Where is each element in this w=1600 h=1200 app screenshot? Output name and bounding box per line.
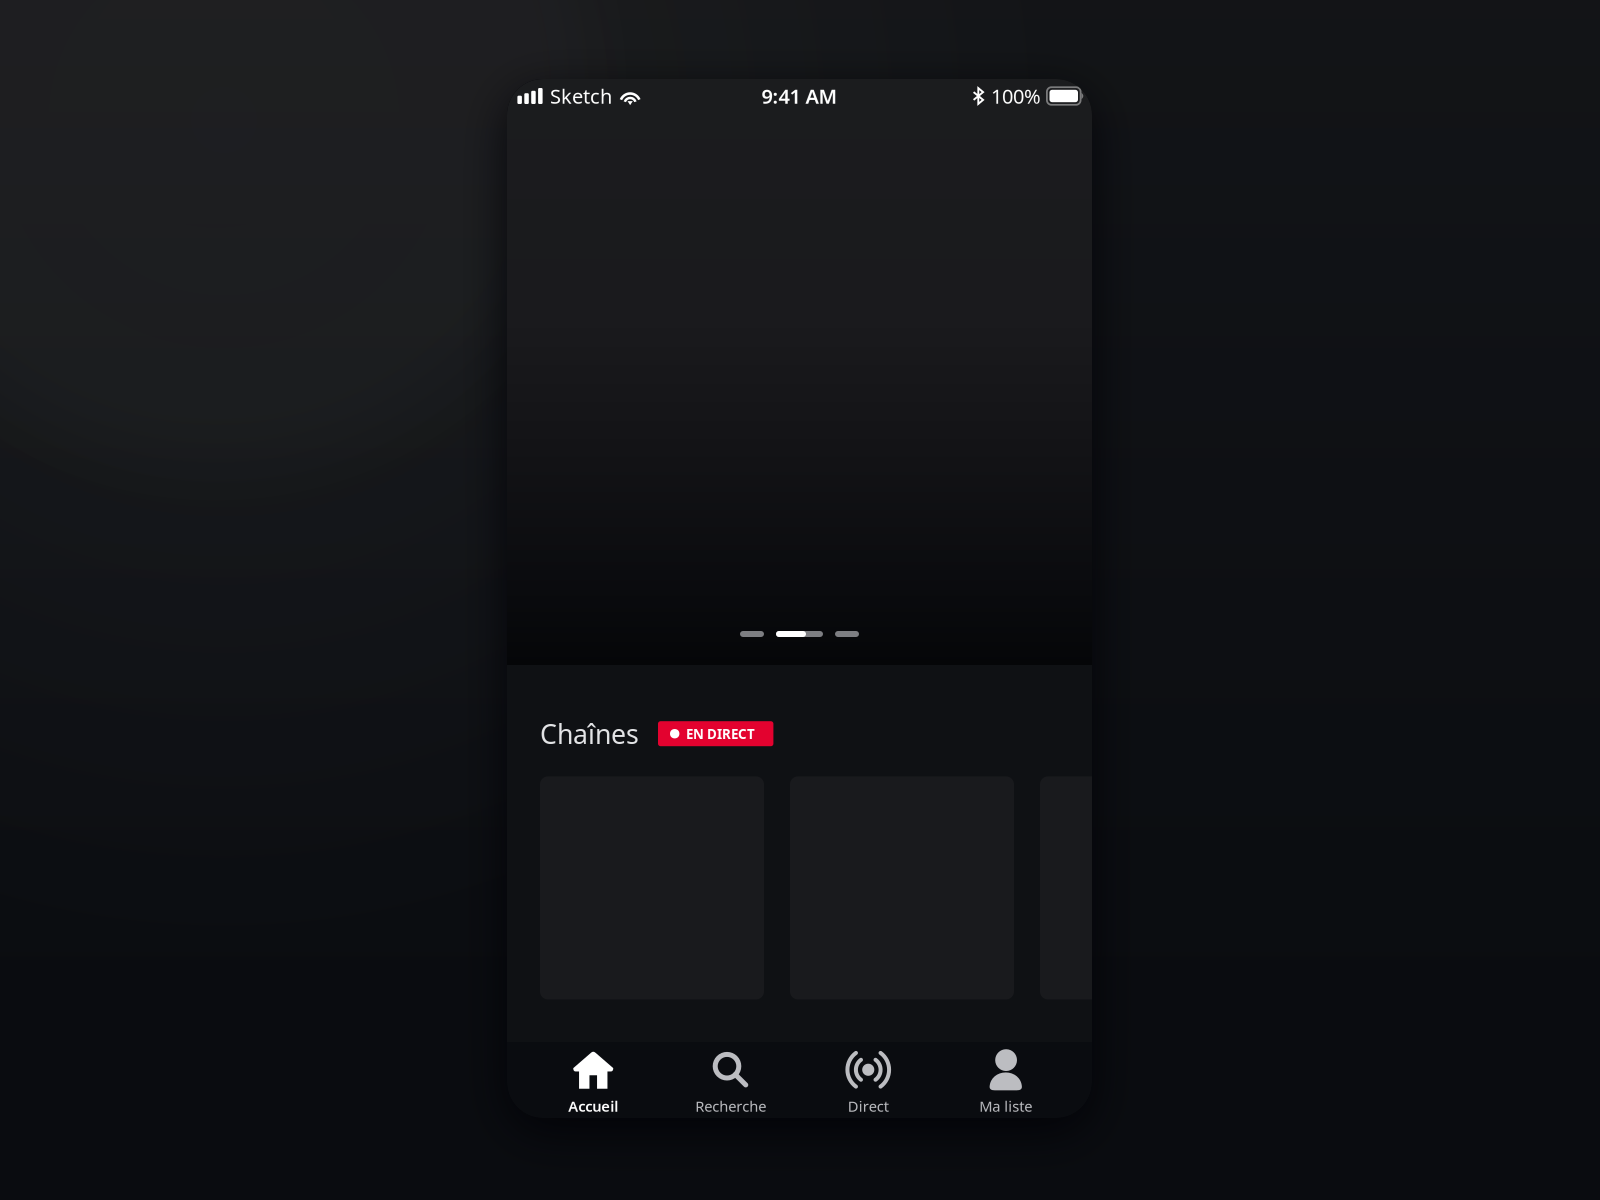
- button[interactable]: [1040, 776, 1264, 999]
- staticText: Ma liste: [979, 1096, 1032, 1116]
- staticText: Direct: [848, 1096, 889, 1116]
- staticText: 100%: [991, 83, 1041, 109]
- button[interactable]: Ma liste: [937, 1038, 1074, 1122]
- button[interactable]: Accueil: [524, 1038, 662, 1122]
- staticText: Chaînes: [540, 716, 639, 751]
- staticText: 9:41 AM: [761, 83, 837, 109]
- button[interactable]: Direct: [799, 1038, 937, 1122]
- button[interactable]: Slide 3: [835, 631, 859, 637]
- button[interactable]: Recherche: [662, 1038, 799, 1122]
- staticText: EN DIRECT: [686, 725, 755, 743]
- button[interactable]: EN DIRECT: [658, 721, 773, 746]
- button[interactable]: Slide 2, current: [776, 631, 823, 637]
- button[interactable]: Slide 1: [740, 631, 764, 637]
- staticText: Sketch: [550, 83, 612, 109]
- staticText: Recherche: [695, 1096, 766, 1116]
- staticText: Accueil: [568, 1096, 618, 1116]
